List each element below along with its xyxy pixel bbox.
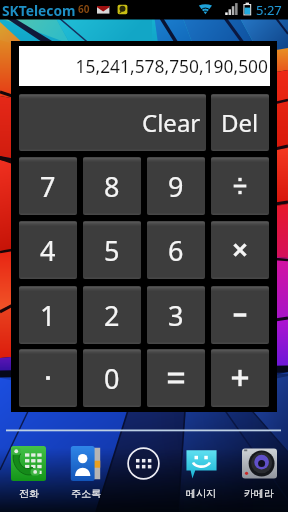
staticText: 카메라: [244, 487, 274, 500]
button[interactable]: Del: [211, 94, 269, 151]
button[interactable]: 7: [19, 157, 77, 215]
staticText: 8: [104, 168, 120, 205]
staticText: Clear: [142, 106, 201, 139]
button[interactable]: 주소록: [57, 446, 114, 504]
staticText: 5: [104, 232, 120, 269]
staticText: 주소록: [71, 487, 101, 500]
staticText: 메시지: [186, 487, 216, 500]
button[interactable]: Plus: [211, 349, 269, 407]
button[interactable]: 2: [83, 286, 141, 344]
button[interactable]: 8: [83, 157, 141, 215]
button[interactable]: Apps: [114, 446, 172, 504]
staticText: 2: [104, 297, 120, 334]
button[interactable]: 1: [19, 286, 77, 344]
staticText: 60: [78, 2, 90, 16]
button[interactable]: 3: [147, 286, 205, 344]
button[interactable]: Minus: [211, 286, 269, 344]
staticText: 전화: [19, 487, 39, 500]
staticText: 0: [104, 360, 120, 397]
button[interactable]: 4: [19, 221, 77, 279]
staticText: 9: [168, 168, 184, 205]
button[interactable]: Divide: [211, 157, 269, 215]
button[interactable]: 6: [147, 221, 205, 279]
staticText: 4: [40, 232, 56, 269]
button[interactable]: Equals: [147, 349, 205, 407]
staticText: 5:27: [256, 1, 282, 19]
button[interactable]: Decimal point: [19, 349, 77, 407]
button[interactable]: 9: [147, 157, 205, 215]
button[interactable]: 5: [83, 221, 141, 279]
button[interactable]: Clear: [19, 94, 206, 151]
staticText: 3: [168, 297, 184, 334]
staticText: SKTelecom: [2, 1, 76, 20]
button[interactable]: 0: [83, 349, 141, 407]
staticText: 15,241,578,750,190,500: [75, 54, 268, 78]
staticText: 6: [168, 232, 184, 269]
button[interactable]: 카메라: [230, 446, 288, 504]
staticText: 1: [40, 297, 56, 334]
button[interactable]: 전화: [0, 446, 57, 504]
staticText: 7: [40, 168, 56, 205]
button[interactable]: 메시지: [172, 446, 230, 504]
staticText: Del: [221, 106, 259, 139]
button[interactable]: Multiply: [211, 221, 269, 279]
